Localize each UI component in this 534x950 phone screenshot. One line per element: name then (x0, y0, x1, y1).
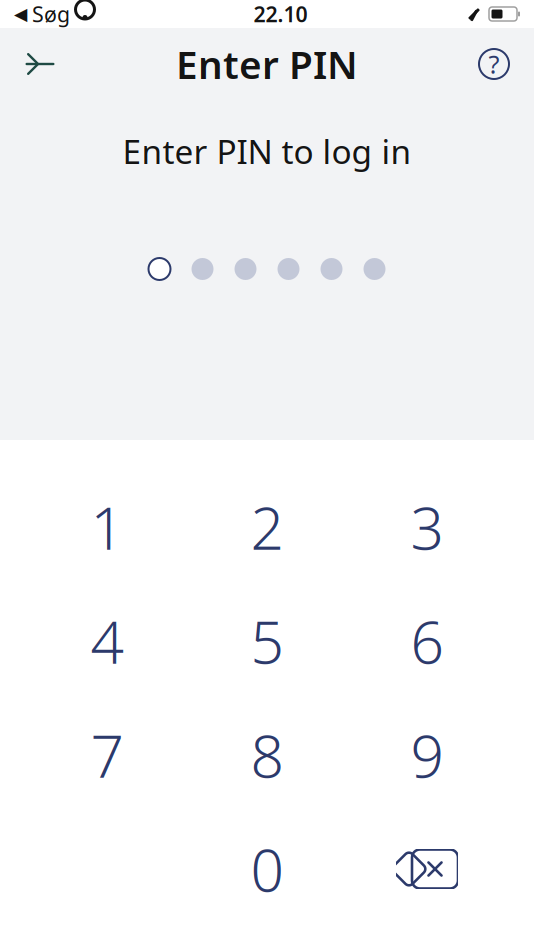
button[interactable]: Help (462, 32, 526, 96)
button[interactable]: 9 (347, 698, 507, 812)
staticText: 22.10 (253, 0, 307, 28)
button[interactable]: 5 (187, 584, 347, 698)
button[interactable]: 8 (187, 698, 347, 812)
staticText: Enter PIN to log in (122, 129, 411, 173)
staticText: 2 (250, 488, 283, 566)
staticText: ? (488, 47, 499, 81)
button[interactable]: 2 (187, 470, 347, 584)
staticText: 3 (410, 488, 443, 566)
staticText: 8 (250, 716, 283, 794)
staticText: 0 (250, 830, 283, 908)
button[interactable]: Back (8, 32, 72, 96)
staticText: 4 (90, 602, 123, 680)
button[interactable]: Delete (347, 812, 507, 926)
button[interactable]: 1 (27, 470, 187, 584)
staticText: ◀ (14, 4, 27, 24)
button[interactable]: 7 (27, 698, 187, 812)
staticText: 1 (90, 488, 123, 566)
staticText: 9 (410, 716, 443, 794)
staticText: 5 (250, 602, 283, 680)
button[interactable]: 6 (347, 584, 507, 698)
staticText: Enter PIN (176, 38, 358, 90)
button[interactable]: 3 (347, 470, 507, 584)
staticText: 7 (90, 716, 123, 794)
staticText: Søg (32, 0, 70, 28)
staticText: 6 (410, 602, 443, 680)
button[interactable]: 4 (27, 584, 187, 698)
button[interactable]: 0 (187, 812, 347, 926)
